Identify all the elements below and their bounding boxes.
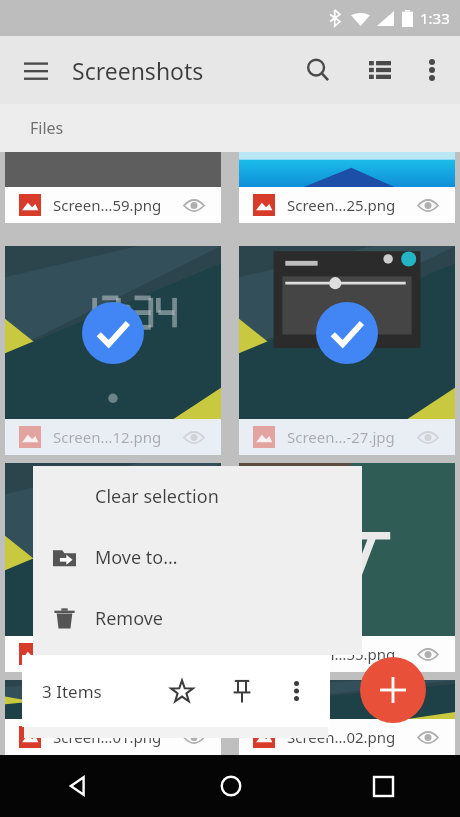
button[interactable]: More options <box>410 48 454 92</box>
staticText: Clear selection <box>95 484 219 509</box>
staticText: Screen…02.png <box>287 727 415 747</box>
button[interactable]: Preview <box>181 424 207 450</box>
button[interactable]: Preview <box>415 192 441 218</box>
staticText: Screen…01.png <box>53 727 181 747</box>
button[interactable]: Recent apps <box>307 755 460 817</box>
button[interactable]: Pin <box>222 671 262 711</box>
button[interactable]: Remove <box>33 588 362 649</box>
staticText: Screen…55.png <box>53 644 181 664</box>
staticText: Remove <box>95 606 164 631</box>
staticText: 1:33 <box>420 8 450 28</box>
button[interactable]: Screen…01.png <box>5 680 221 755</box>
staticText: Move to… <box>95 545 178 570</box>
button[interactable]: Preview <box>415 641 441 667</box>
button[interactable]: Screen…59.png <box>5 152 221 223</box>
button[interactable]: Add <box>360 657 426 723</box>
button[interactable]: Screen…02.png <box>239 680 455 755</box>
staticText: Screen…-27.jpg <box>287 427 415 447</box>
button[interactable]: Open navigation drawer <box>14 48 58 92</box>
button[interactable]: Search <box>296 48 340 92</box>
button[interactable]: 3 Items <box>42 680 102 703</box>
button[interactable]: Screen…12.png <box>5 246 221 455</box>
staticText: Screen…55.png <box>287 644 415 664</box>
button[interactable]: Move to… <box>33 527 362 588</box>
staticText: Screen…59.png <box>53 195 181 215</box>
button[interactable]: Clear selection <box>33 466 362 527</box>
button[interactable]: Screen…55.png <box>5 463 221 672</box>
button[interactable]: Back <box>0 755 154 817</box>
button[interactable]: Screen…25.png <box>239 152 455 223</box>
staticText: Screenshots <box>72 55 204 86</box>
button[interactable]: Preview <box>415 724 441 750</box>
button[interactable]: Screen…55.png <box>239 463 455 672</box>
staticText: Screen…12.png <box>53 427 181 447</box>
staticText: Screen…25.png <box>287 195 415 215</box>
button[interactable]: Screen…-27.jpg <box>239 246 455 455</box>
button[interactable]: More actions <box>276 671 316 711</box>
button[interactable]: Preview <box>181 192 207 218</box>
button[interactable]: Preview <box>415 424 441 450</box>
button[interactable]: Add to favourites <box>162 671 202 711</box>
button[interactable]: Home <box>154 755 307 817</box>
button[interactable]: Preview <box>181 641 207 667</box>
button[interactable]: Preview <box>181 724 207 750</box>
button[interactable]: Switch to list view <box>358 48 402 92</box>
button[interactable]: Files <box>30 117 64 139</box>
